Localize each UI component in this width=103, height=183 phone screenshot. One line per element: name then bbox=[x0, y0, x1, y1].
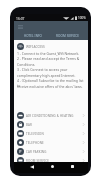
button[interactable]: Back bbox=[30, 165, 34, 169]
button[interactable]: ROOM SERVICE bbox=[51, 32, 88, 40]
staticText: 1 - Connect to the Guest_Wifi Network. bbox=[17, 51, 80, 56]
staticText: ROOM SERVICE bbox=[56, 34, 80, 38]
staticText: ROOM SERVICE bbox=[26, 159, 49, 163]
button[interactable]: Home bbox=[51, 165, 54, 168]
staticText: TELEVISION bbox=[26, 132, 44, 136]
staticText: Conditions. bbox=[17, 62, 36, 67]
staticText: HOTEL INFO bbox=[24, 34, 42, 38]
staticText: CAR PARKING bbox=[26, 150, 47, 154]
button[interactable]: Recents bbox=[71, 165, 74, 168]
button[interactable]: Menu bbox=[18, 24, 23, 30]
button[interactable]: BAR bbox=[14, 120, 88, 129]
button[interactable]: ROOM SERVICE bbox=[14, 156, 88, 165]
staticText: AIR CONDITIONING & HEATING bbox=[26, 114, 74, 118]
staticText: BAR bbox=[26, 123, 33, 127]
button[interactable]: TELEVISION bbox=[14, 129, 88, 138]
staticText: complimentary high-speed Internet. bbox=[17, 73, 76, 78]
staticText: 3 - Click Connect to access your bbox=[17, 67, 68, 72]
staticText: WIFI ACCESS bbox=[26, 45, 45, 49]
staticText: 4 - (Optional) Subscribe to the mailing … bbox=[17, 78, 85, 88]
staticText: 2 - Please read and accept the Terms & bbox=[17, 56, 80, 61]
button[interactable]: TELEPHONE bbox=[14, 138, 88, 147]
button[interactable]: HOTEL INFO bbox=[14, 32, 51, 40]
staticText: 16:07 bbox=[16, 16, 25, 20]
button[interactable]: AIR CONDITIONING & HEATING bbox=[14, 111, 88, 120]
staticText: 100% bbox=[78, 16, 86, 20]
staticText: TELEPHONE bbox=[26, 141, 44, 145]
staticText: receive exclusive offers of the abcs' la… bbox=[17, 84, 83, 89]
button[interactable]: CAR PARKING bbox=[14, 147, 88, 156]
